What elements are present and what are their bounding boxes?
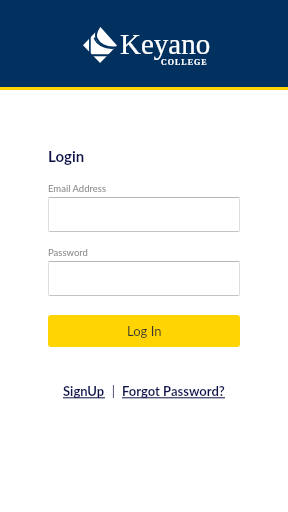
button[interactable]: Log In bbox=[48, 315, 240, 347]
button[interactable]: Password input bbox=[48, 261, 240, 296]
staticText: Forgot Password? bbox=[122, 383, 225, 399]
other: Keyano College logo bbox=[83, 27, 117, 63]
staticText: Password bbox=[48, 247, 88, 258]
button[interactable]: Email Address input bbox=[48, 197, 240, 232]
staticText: | bbox=[105, 383, 122, 399]
staticText: Email Address bbox=[48, 183, 106, 194]
staticText: Keyano bbox=[120, 28, 211, 60]
staticText: COLLEGE bbox=[161, 58, 208, 67]
staticText: SignUp bbox=[63, 383, 105, 399]
staticText: Login bbox=[48, 147, 85, 165]
staticText: Log In bbox=[127, 323, 162, 339]
button[interactable]: SignUp bbox=[63, 383, 105, 399]
button[interactable]: Forgot Password? bbox=[122, 383, 225, 399]
